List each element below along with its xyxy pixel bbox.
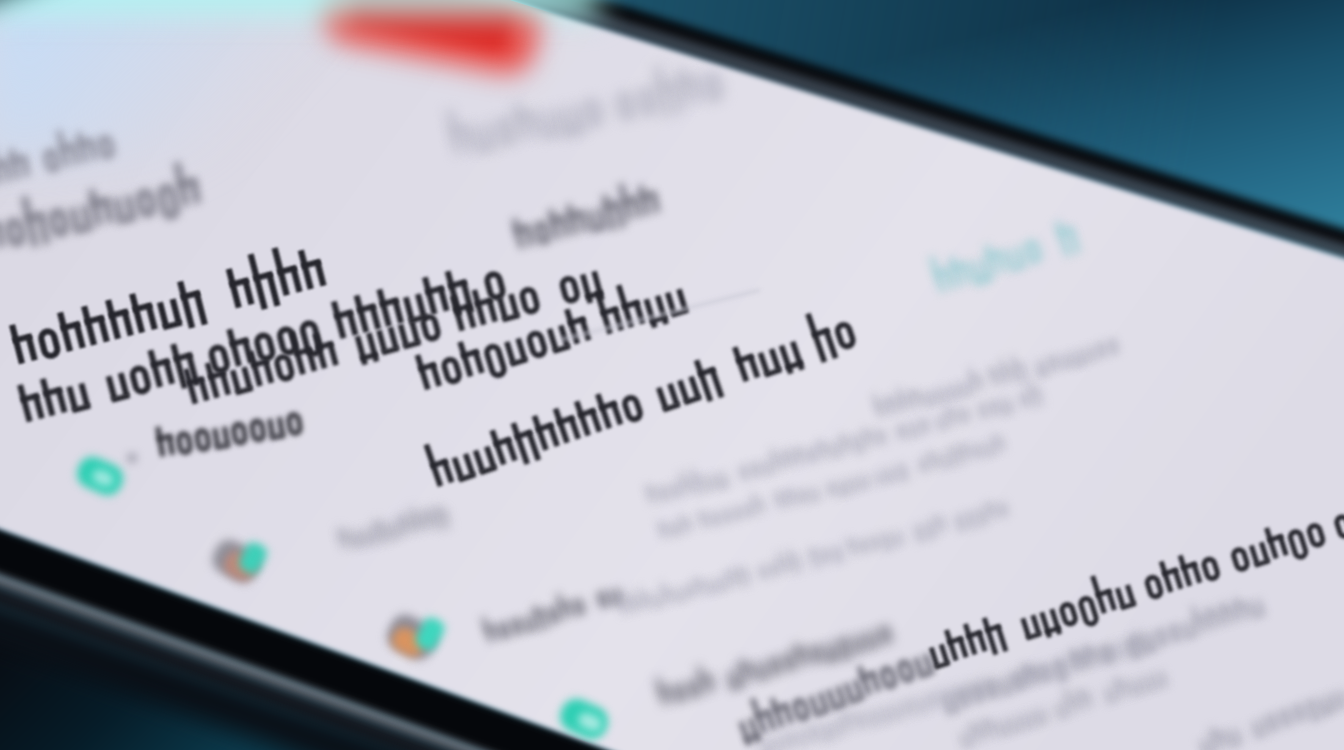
button[interactable]: App icon xyxy=(296,0,565,83)
button[interactable]: App list item 4 xyxy=(511,675,1291,750)
button[interactable]: App list item 1 xyxy=(40,428,846,541)
button[interactable]: App list item 3 xyxy=(349,593,1155,691)
button[interactable]: App title and developer xyxy=(0,225,753,405)
button[interactable]: Open xyxy=(887,195,1075,278)
button[interactable]: App list item 2 xyxy=(175,510,981,608)
